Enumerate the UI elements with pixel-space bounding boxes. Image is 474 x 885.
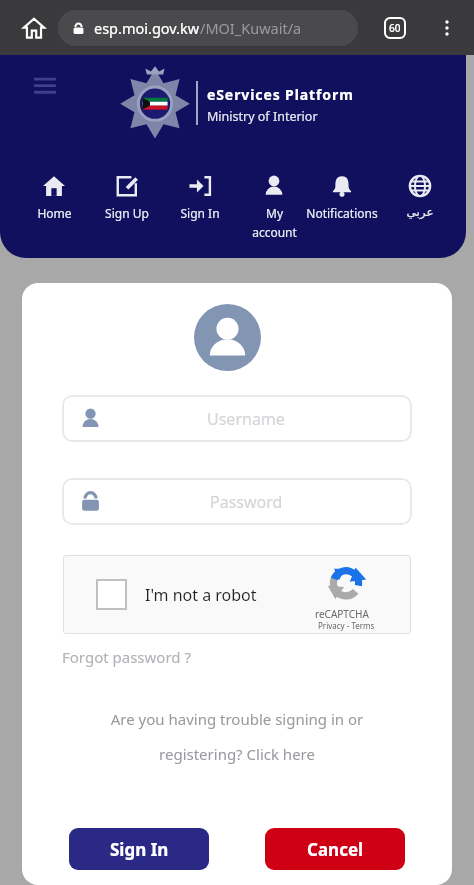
staticText: My account [252,205,297,240]
staticText: eServices Platform [207,85,354,104]
button[interactable]: Are you having trouble signing in or reg… [78,709,396,765]
staticText: Privacy - Terms [318,620,375,631]
button[interactable]: Sign Up [81,173,173,221]
button[interactable]: Home [8,173,100,221]
staticText: Sign In [110,838,169,861]
button[interactable]: Password [62,478,412,525]
button[interactable]: Sign In [69,828,209,870]
button[interactable]: Menu [28,69,62,103]
staticText: Forgot password ? [62,647,191,667]
staticText: Home [37,205,72,221]
staticText: Ministry of Interior [207,108,318,125]
staticText: I'm not a robot [145,584,257,606]
staticText: Sign Up [105,205,149,221]
button[interactable]: Home [14,8,54,48]
staticText: /MOI_Kuwait/а [200,18,302,38]
staticText: عربي [406,205,434,219]
staticText: Sign In [180,205,220,221]
button[interactable]: I'm not a robot [63,555,411,634]
button[interactable]: Tabs [378,11,412,45]
button[interactable]: Username [62,395,412,442]
button[interactable]: More options [428,9,466,47]
staticText: reCAPTCHA [315,607,369,621]
staticText: 60 [389,21,401,35]
staticText: Notifications [306,205,378,221]
button[interactable]: Cancel [265,828,405,870]
button[interactable]: Notifications [296,173,388,221]
button[interactable]: esp.moi.gov.kw [58,10,358,46]
staticText: Username [207,408,285,430]
button[interactable]: عربي [374,173,466,219]
staticText: Password [210,491,283,513]
button[interactable]: My account [228,173,320,240]
staticText: esp.moi.gov.kw [94,18,200,38]
button[interactable]: Forgot password ? [58,643,195,671]
button[interactable]: Sign In [154,173,246,221]
staticText: Cancel [307,838,364,861]
staticText: Are you having trouble signing in or reg… [78,709,396,765]
